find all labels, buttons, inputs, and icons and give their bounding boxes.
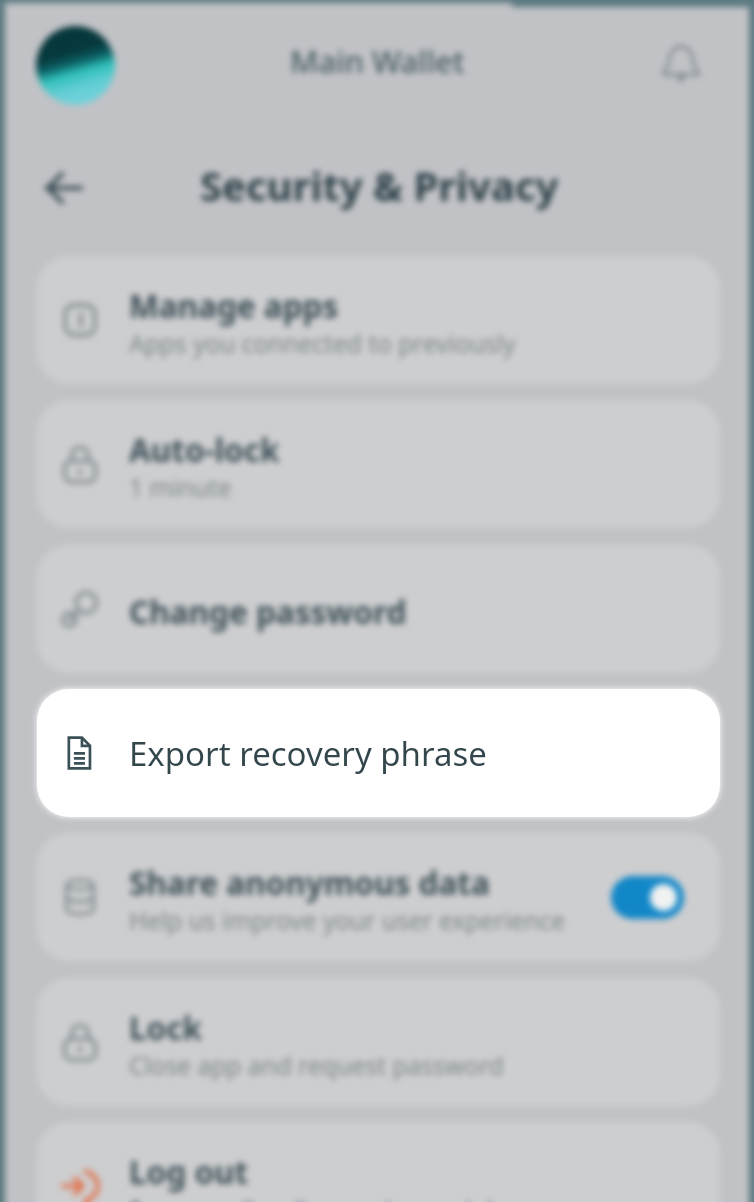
staticText: Change password [129,590,407,633]
staticText: Lock [129,1006,203,1049]
button[interactable]: Back [35,159,93,217]
button[interactable]: Notifications [656,39,706,89]
button[interactable]: Toggle share anonymous data [611,876,684,919]
button[interactable]: Manage apps [37,256,720,384]
staticText: Close app and request password [129,1049,504,1082]
button[interactable]: Export recovery phrase [37,689,720,817]
staticText: Manage apps [129,284,339,327]
staticText: Main Wallet [290,40,465,82]
staticText: 1 minute [129,471,232,504]
button[interactable]: Profile [36,26,115,105]
button[interactable]: Log out [37,1122,720,1202]
staticText: Share anonymous data [129,861,490,904]
button[interactable]: Lock [37,978,720,1106]
staticText: Remove all wallets and stored data [129,1193,530,1202]
button[interactable]: Change password [37,545,720,673]
staticText: Security & Privacy [200,158,559,212]
staticText: Help us improve your user experience [129,904,566,937]
staticText: Auto-lock [129,428,280,471]
button[interactable]: Share anonymous data [37,833,720,961]
staticText: Export recovery phrase [129,731,487,776]
button[interactable]: Auto-lock [37,400,720,528]
staticText: Apps you connected to previously [129,327,516,360]
staticText: Log out [129,1150,249,1193]
